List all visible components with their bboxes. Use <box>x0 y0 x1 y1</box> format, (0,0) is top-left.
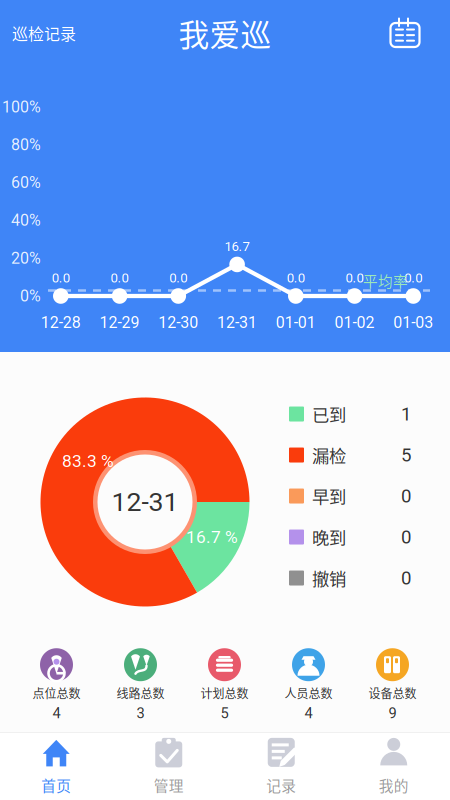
button[interactable]: Calendar <box>388 17 421 49</box>
staticText: 16.7 % <box>186 527 238 547</box>
staticText: 0.0 <box>169 270 187 286</box>
staticText: 线路总数 <box>116 684 164 702</box>
staticText: 计划总数 <box>200 684 248 702</box>
staticText: 1 <box>401 403 411 425</box>
staticText: 我爱巡 <box>178 11 271 55</box>
staticText: 5 <box>401 444 411 466</box>
staticText: 12-31 <box>111 486 178 518</box>
staticText: 设备总数 <box>368 684 416 702</box>
staticText: 0.0 <box>287 270 305 286</box>
staticText: 01-01 <box>276 313 316 332</box>
staticText: 0 <box>401 526 411 548</box>
staticText: 0.0 <box>346 270 364 286</box>
staticText: 80% <box>11 135 41 154</box>
staticText: 点位总数 <box>32 684 80 702</box>
staticText: 漏检 <box>312 442 346 468</box>
button[interactable]: 我的 <box>337 737 450 796</box>
staticText: 01-02 <box>335 313 375 332</box>
staticText: 0 <box>401 485 411 507</box>
staticText: 0.0 <box>404 270 422 286</box>
staticText: 0.0 <box>111 270 129 286</box>
button[interactable]: 管理 <box>112 737 225 796</box>
staticText: 首页 <box>41 774 71 796</box>
staticText: 4 <box>304 705 312 722</box>
staticText: 60% <box>11 173 41 192</box>
staticText: 20% <box>11 249 41 268</box>
staticText: 0% <box>20 287 41 305</box>
staticText: 01-03 <box>393 313 433 332</box>
staticText: 100% <box>2 98 41 116</box>
button[interactable]: 设备总数 <box>350 648 434 722</box>
staticText: 管理 <box>154 774 184 796</box>
staticText: 平均率 <box>363 270 408 291</box>
button[interactable]: 记录 <box>225 737 337 796</box>
button[interactable]: 首页 <box>0 737 112 796</box>
button[interactable]: 巡检记录 <box>12 21 76 45</box>
staticText: 12-28 <box>41 313 81 332</box>
button[interactable]: 计划总数 <box>182 648 266 722</box>
staticText: 晚到 <box>312 524 346 550</box>
staticText: 83.3 % <box>62 451 114 471</box>
staticText: 已到 <box>312 401 346 427</box>
staticText: 撤销 <box>312 565 346 591</box>
staticText: 0 <box>401 567 411 589</box>
button[interactable]: 点位总数 <box>14 648 98 722</box>
staticText: 16.7 <box>225 239 250 254</box>
staticText: 0.0 <box>52 270 70 286</box>
staticText: 人员总数 <box>284 684 332 702</box>
staticText: 早到 <box>312 483 346 509</box>
staticText: 12-29 <box>100 313 140 332</box>
button[interactable]: 线路总数 <box>98 648 182 722</box>
staticText: 9 <box>388 705 396 722</box>
staticText: 5 <box>220 705 228 722</box>
button[interactable]: 人员总数 <box>266 648 350 722</box>
staticText: 记录 <box>266 774 296 796</box>
staticText: 40% <box>11 211 41 230</box>
staticText: 12-30 <box>158 313 198 332</box>
staticText: 3 <box>136 705 144 722</box>
staticText: 巡检记录 <box>12 21 76 45</box>
staticText: 我的 <box>379 774 409 796</box>
staticText: 12-31 <box>217 313 257 332</box>
staticText: 4 <box>52 705 60 722</box>
